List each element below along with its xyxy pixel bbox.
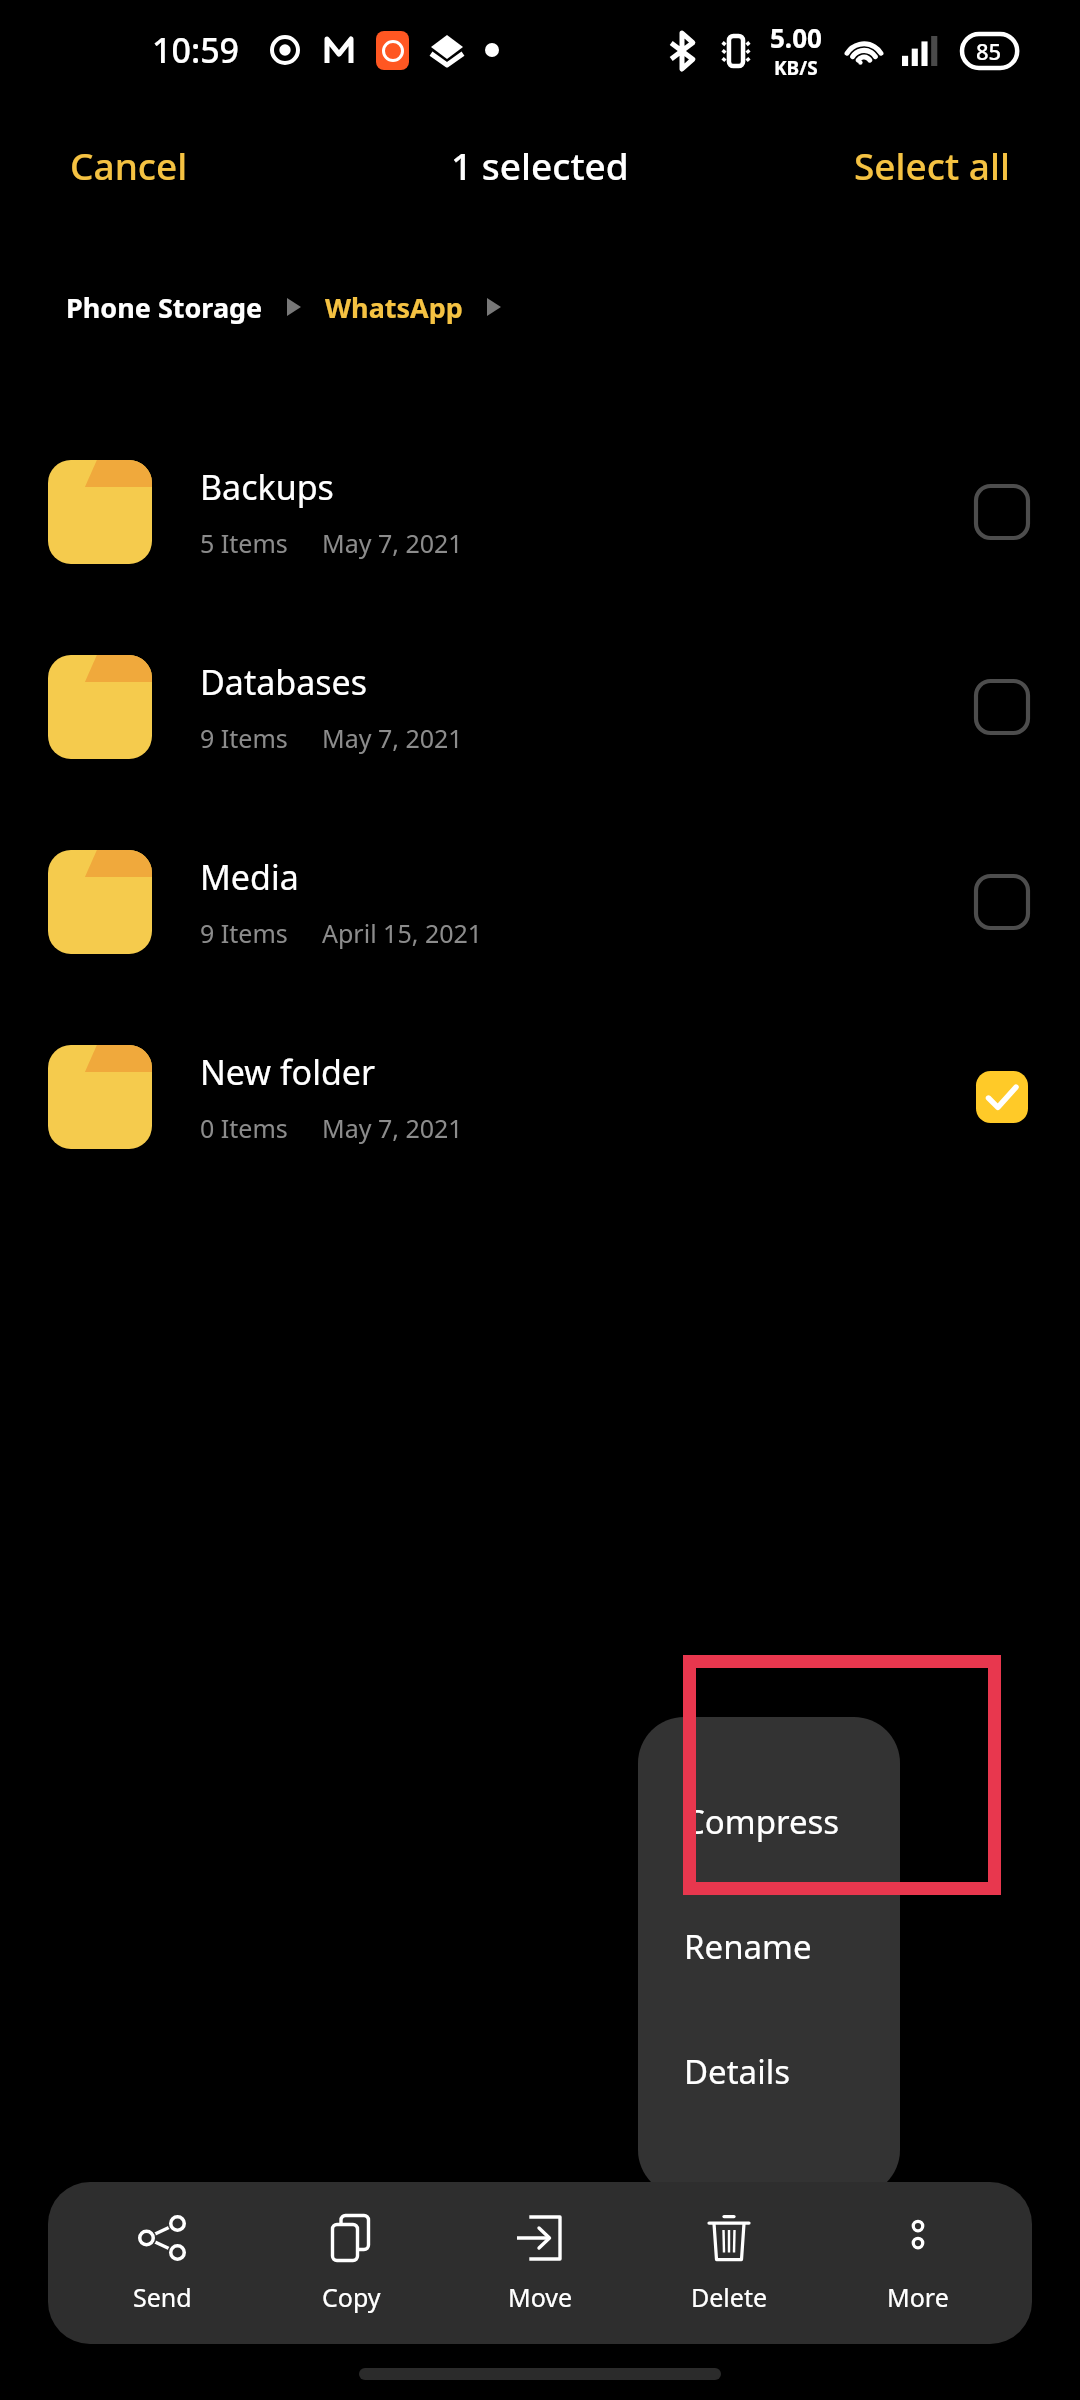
button[interactable]: More [843,2202,993,2324]
staticText: May 7, 2021 [322,721,463,755]
staticText: More [887,2280,949,2314]
staticText: New folder [200,1049,376,1095]
staticText: 9 Items [200,916,288,950]
button[interactable]: Rename [638,1884,900,2009]
button[interactable]: Compress [638,1759,900,1884]
staticText: Databases [200,659,367,705]
staticText: Copy [322,2280,381,2314]
staticText: 9 Items [200,721,288,755]
staticText: 1 selected [451,140,629,190]
staticText: Cancel [70,140,188,190]
button[interactable]: WhatsApp [317,279,471,336]
staticText: May 7, 2021 [322,1111,463,1145]
staticText: Delete [691,2280,768,2314]
staticText: WhatsApp [325,289,463,326]
staticText: 85 [976,36,1002,66]
staticText: Select all [854,140,1010,190]
staticText: Send [133,2280,192,2314]
staticText: 5.00 [770,20,822,55]
staticText: KB/S [774,55,818,81]
staticText: April 15, 2021 [322,916,483,950]
staticText: 10:59 [152,27,240,73]
button[interactable]: Send [87,2202,237,2324]
button[interactable]: Phone Storage [58,279,271,336]
button[interactable]: Backups [0,414,1080,609]
staticText: Compress [684,1799,840,1844]
staticText: Details [684,2049,790,2094]
button[interactable]: Delete [654,2202,804,2324]
button[interactable]: Copy [276,2202,426,2324]
staticText: Move [508,2280,573,2314]
button[interactable]: Cancel [42,124,216,206]
staticText: Media [200,854,299,900]
button[interactable]: Details [638,2009,900,2134]
button[interactable]: Media [0,804,1080,999]
button[interactable]: Not selected [942,647,1062,767]
button[interactable]: Databases [0,609,1080,804]
button[interactable]: Move [465,2202,615,2324]
button[interactable]: Selected [942,1037,1062,1157]
staticText: May 7, 2021 [322,526,463,560]
staticText: Rename [684,1924,812,1969]
button[interactable]: Select all [826,124,1038,206]
button[interactable]: Not selected [942,452,1062,572]
staticText: 0 Items [200,1111,288,1145]
button[interactable]: New folder [0,999,1080,1194]
staticText: Phone Storage [66,289,263,326]
staticText: Backups [200,464,334,510]
button[interactable]: Not selected [942,842,1062,962]
staticText: 5 Items [200,526,288,560]
